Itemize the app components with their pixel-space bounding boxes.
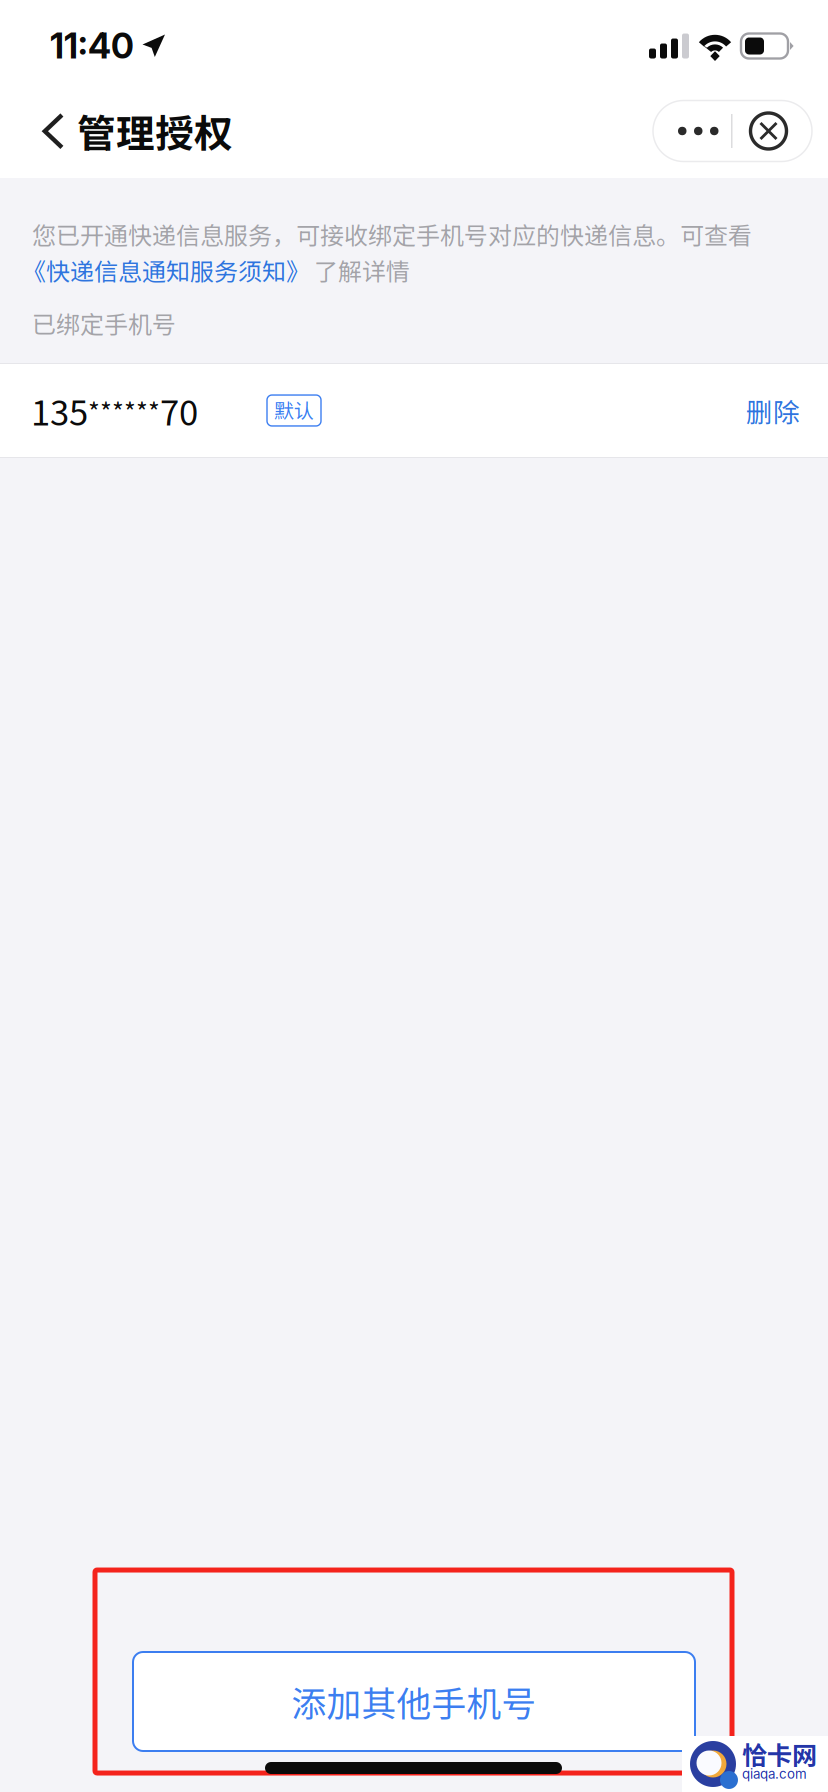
staticText: 默认 — [274, 395, 314, 424]
staticText: 了解详情 — [314, 253, 410, 287]
staticText: 恰卡网 — [742, 1736, 817, 1772]
staticText: 135 — [31, 385, 88, 436]
staticText: qiaqa.com — [742, 1766, 807, 1782]
staticText: ****** — [88, 392, 160, 429]
staticText: 已绑定手机号 — [32, 306, 176, 340]
button[interactable]: Close — [732, 100, 812, 161]
button[interactable]: 添加其他手机号 — [133, 1652, 695, 1751]
button[interactable]: Back — [0, 88, 77, 174]
staticText: 添加其他手机号 — [291, 1676, 536, 1727]
staticText: 删除 — [746, 391, 800, 430]
staticText: 70 — [160, 385, 198, 436]
staticText: 您已开通快递信息服务，可接收绑定手机号对应的快递信息。可查看 — [32, 217, 752, 251]
staticText: 11:40 — [50, 25, 134, 67]
staticText: 《快递信息通知服务须知》 — [22, 253, 310, 287]
button[interactable]: More options — [653, 100, 731, 161]
button[interactable]: 删除 — [746, 391, 800, 430]
button[interactable]: 《快递信息通知服务须知》 — [32, 253, 320, 287]
staticText: 管理授权 — [77, 103, 233, 159]
